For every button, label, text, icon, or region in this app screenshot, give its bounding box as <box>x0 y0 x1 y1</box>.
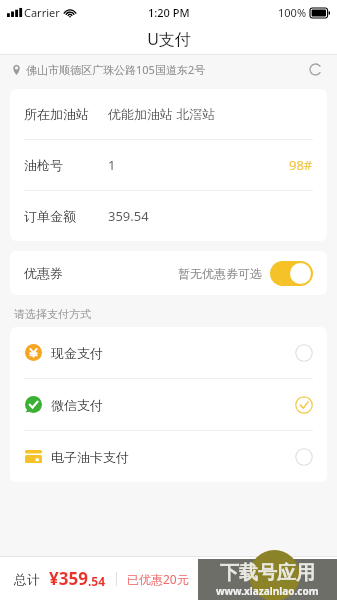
button[interactable]: 电子油卡支付 <box>10 431 327 482</box>
button[interactable]: 油枪号 <box>10 140 327 190</box>
staticText: 100% <box>278 5 307 20</box>
staticText: 现金支付 <box>51 345 103 361</box>
staticText: 所在加油站 <box>24 106 108 122</box>
staticText: 优能加油站 北滘站 <box>108 105 216 123</box>
staticText: 订单金额 <box>24 208 108 224</box>
staticText: Carrier <box>24 5 60 20</box>
button[interactable]: Refresh <box>305 59 325 79</box>
staticText: 暂无优惠券可选 <box>178 266 262 281</box>
button[interactable]: 订单金额 <box>10 191 327 241</box>
staticText: 下载号应用 <box>220 561 315 585</box>
button[interactable]: Coupon toggle <box>270 261 313 286</box>
button[interactable]: 现金支付 <box>10 327 327 378</box>
staticText: 总计 <box>14 571 40 587</box>
staticText: 98# <box>289 156 313 174</box>
staticText: 359.54 <box>108 207 149 225</box>
staticText: 已优惠20元 <box>127 571 189 587</box>
staticText: 电子油卡支付 <box>51 449 129 465</box>
button[interactable]: 微信支付 <box>10 379 327 430</box>
staticText: 微信支付 <box>51 397 103 413</box>
staticText: 优惠券 <box>24 265 63 281</box>
staticText: 佛山市顺德区广珠公路105国道东2号 <box>26 62 206 77</box>
staticText: 1:20 PM <box>148 5 190 20</box>
staticText: 油枪号 <box>24 157 108 173</box>
staticText: 请选择支付方式 <box>14 307 91 321</box>
staticText: 1 <box>108 156 116 174</box>
staticText: ¥359 <box>49 567 88 590</box>
staticText: U支付 <box>147 28 191 50</box>
staticText: .54 <box>88 573 106 589</box>
button[interactable]: 优惠券 <box>10 251 327 295</box>
staticText: www.xlazalnlao.com <box>216 584 319 598</box>
button[interactable]: 所在加油站 <box>10 89 327 139</box>
